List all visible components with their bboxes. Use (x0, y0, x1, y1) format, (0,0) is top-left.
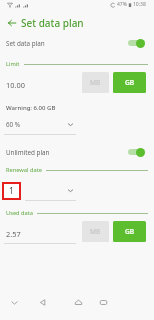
button[interactable]: 1 (0, 181, 78, 200)
staticText: 1 (9, 185, 14, 197)
staticText: GB (125, 227, 135, 236)
staticText: MB (90, 227, 101, 236)
button[interactable]: Navigate up (4, 15, 19, 30)
staticText: 47% (117, 1, 127, 8)
button[interactable]: GB (113, 72, 146, 93)
staticText: Limit (6, 60, 20, 68)
button[interactable]: Back (30, 290, 54, 314)
staticText: Unlimited plan (6, 148, 50, 157)
staticText: Used data (6, 209, 33, 217)
button[interactable]: Unlimited plan (0, 143, 154, 161)
staticText: GB (125, 78, 135, 87)
button[interactable]: Set data plan (0, 34, 154, 52)
button[interactable]: Home (66, 290, 90, 314)
staticText: Set data plan (21, 16, 84, 30)
staticText: 10.00 (6, 80, 25, 90)
button[interactable]: GB (113, 221, 146, 242)
button[interactable]: MB (82, 72, 109, 93)
staticText: Renewal date (6, 166, 42, 174)
staticText: 10:38 (133, 1, 146, 8)
staticText: 60 % (6, 120, 21, 129)
staticText: 2.57 (6, 229, 21, 239)
button[interactable]: MB (82, 221, 109, 242)
staticText: Set data plan (6, 39, 45, 48)
staticText: Warning: 6.00 GB (6, 104, 56, 112)
button[interactable]: Hide keyboard (2, 290, 26, 314)
button[interactable]: 60 % (0, 114, 78, 134)
staticText: MB (90, 78, 101, 87)
button[interactable]: Recents (91, 290, 115, 314)
